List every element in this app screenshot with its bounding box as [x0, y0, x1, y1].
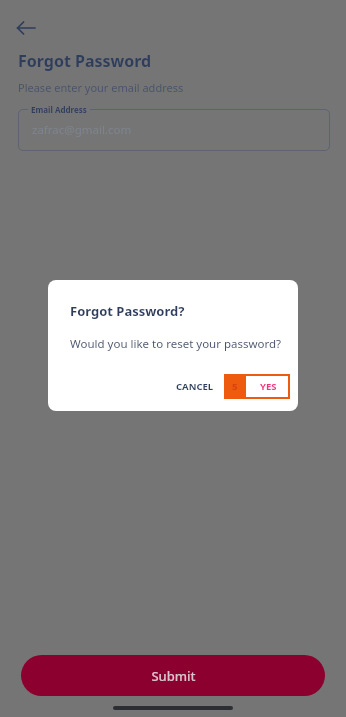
staticText: 5 [232, 380, 238, 393]
staticText: Email Address [31, 104, 87, 115]
button[interactable]: YES [246, 374, 290, 399]
button[interactable]: Back [8, 10, 44, 46]
button[interactable] [18, 109, 330, 151]
staticText: Forgot Password [18, 50, 152, 72]
staticText: Forgot Password? [70, 302, 185, 320]
button[interactable]: CANCEL [166, 374, 224, 399]
staticText: Please enter your email address [18, 80, 184, 95]
button[interactable]: Submit [21, 655, 325, 696]
staticText: zafrac@gmail.com [32, 122, 132, 138]
staticText: YES [260, 380, 277, 393]
staticText: Would you like to reset your password? [70, 336, 282, 352]
staticText: CANCEL [176, 380, 214, 393]
staticText: Submit [151, 667, 196, 685]
